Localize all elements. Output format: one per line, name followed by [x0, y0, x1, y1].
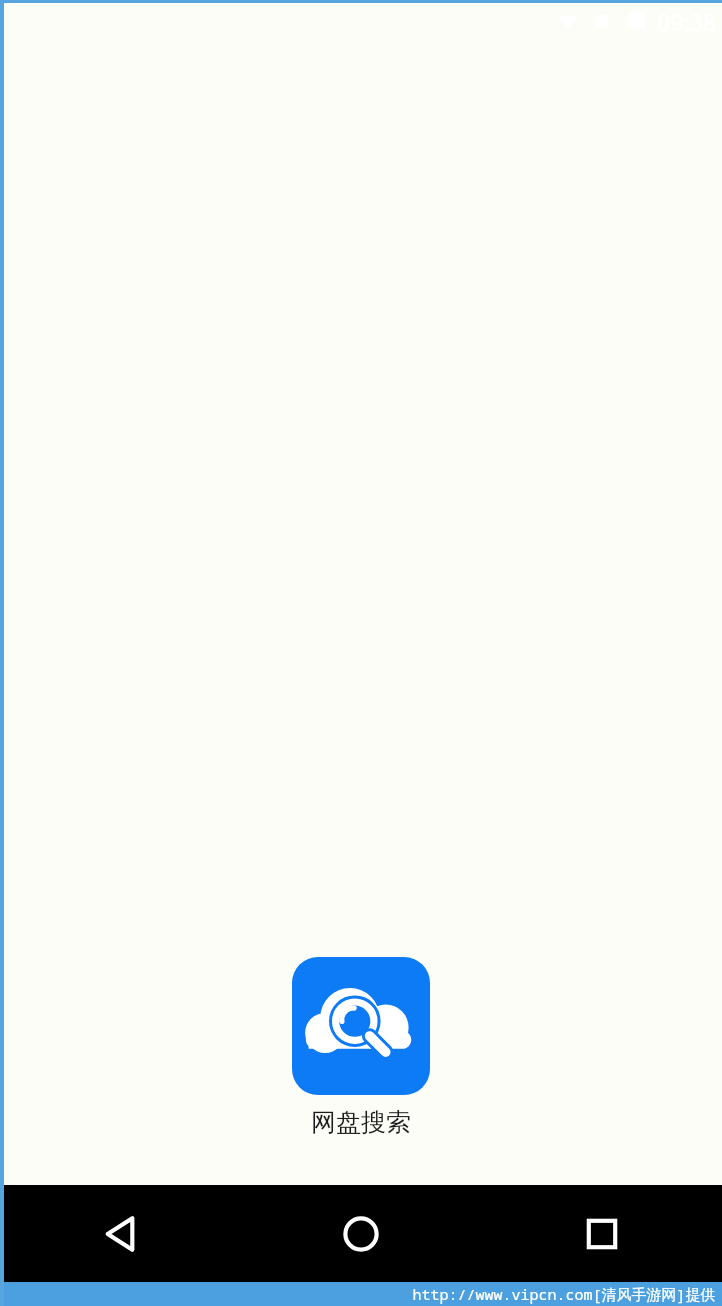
button[interactable]: Home	[240, 1185, 481, 1282]
button[interactable]: 网盘搜索	[292, 957, 430, 1138]
button[interactable]: Back	[0, 1185, 240, 1282]
staticText: http://www.vipcn.com[清风手游网]提供	[412, 1284, 716, 1304]
button[interactable]: Recent apps	[481, 1185, 722, 1282]
staticText: 网盘搜索	[311, 1107, 411, 1138]
staticText: 09:38	[657, 6, 716, 36]
